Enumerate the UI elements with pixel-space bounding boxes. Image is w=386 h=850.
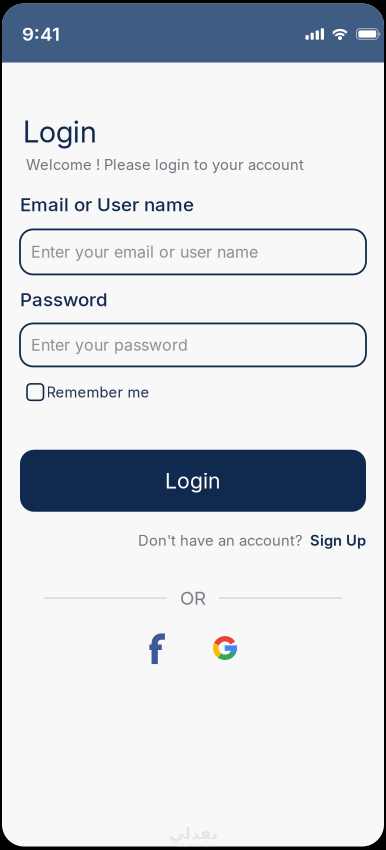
staticText: Sign Up	[310, 532, 366, 549]
button[interactable]: Sign Up	[310, 532, 366, 549]
staticText: OR	[180, 587, 206, 609]
staticText: Login	[165, 468, 221, 493]
staticText: Don't have an account?	[138, 532, 302, 549]
staticText: Enter your password	[31, 335, 188, 354]
staticText: Remember me	[46, 383, 149, 401]
button[interactable]: Login with Google	[213, 634, 237, 662]
button[interactable]: Login with Facebook	[149, 632, 165, 664]
button[interactable]: Login	[20, 450, 366, 512]
button[interactable]: Enter your password	[20, 323, 366, 366]
staticText: Login	[23, 114, 97, 149]
staticText: 9:41	[22, 23, 60, 45]
staticText: نفذلي	[168, 824, 217, 843]
staticText: Welcome ! Please login to your account	[26, 156, 304, 173]
staticText: Enter your email or user name	[31, 242, 258, 261]
staticText: nafezly.com	[173, 843, 212, 850]
staticText: Password	[20, 288, 108, 310]
button[interactable]: Enter your email or user name	[20, 229, 366, 274]
button[interactable]: Remember me	[20, 383, 149, 401]
staticText: Email or User name	[20, 193, 194, 215]
